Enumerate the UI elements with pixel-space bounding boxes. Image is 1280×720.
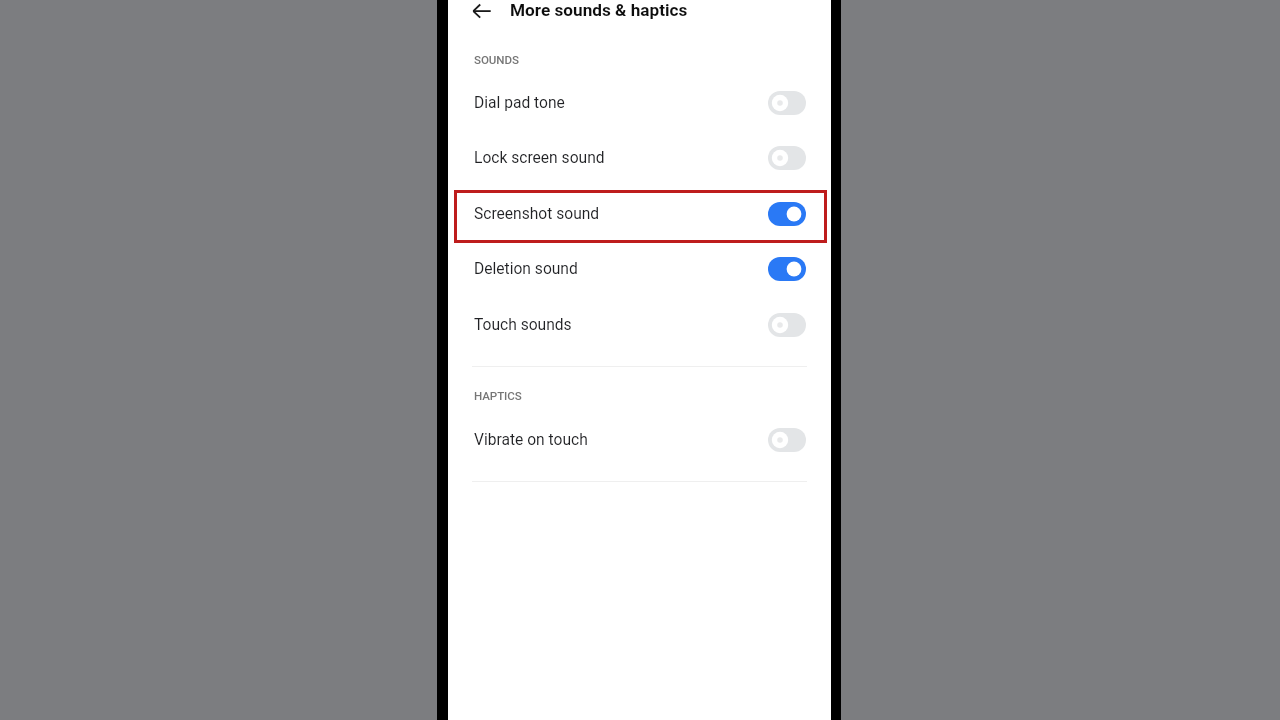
- button[interactable]: Touch sounds off: [768, 313, 806, 337]
- staticText: SOUNDS: [474, 53, 519, 67]
- staticText: Vibrate on touch: [474, 431, 588, 449]
- button[interactable]: Touch sounds: [448, 299, 831, 351]
- button[interactable]: Deletion sound on: [768, 257, 806, 281]
- staticText: Touch sounds: [474, 316, 572, 334]
- button[interactable]: Lock screen sound: [448, 132, 831, 184]
- button[interactable]: Vibrate on touch: [448, 414, 831, 466]
- button[interactable]: Screenshot sound: [448, 188, 831, 240]
- button[interactable]: Dial pad tone: [448, 77, 831, 129]
- button[interactable]: Screenshot sound on: [768, 202, 806, 226]
- staticText: Lock screen sound: [474, 149, 605, 167]
- button[interactable]: Back: [463, 0, 501, 22]
- staticText: More sounds & haptics: [510, 0, 688, 20]
- staticText: HAPTICS: [474, 389, 522, 403]
- button[interactable]: Vibrate on touch off: [768, 428, 806, 452]
- staticText: Deletion sound: [474, 260, 578, 278]
- button[interactable]: Dial pad tone off: [768, 91, 806, 115]
- button[interactable]: Deletion sound: [448, 243, 831, 295]
- staticText: Screenshot sound: [474, 205, 600, 223]
- button[interactable]: Lock screen sound off: [768, 146, 806, 170]
- staticText: Dial pad tone: [474, 94, 565, 112]
